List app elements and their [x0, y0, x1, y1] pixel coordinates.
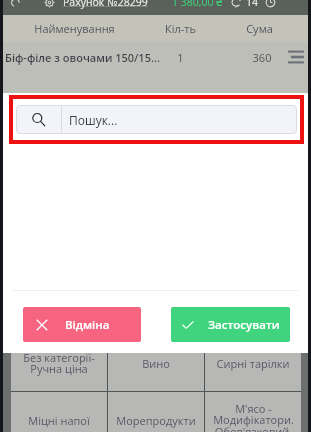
button[interactable]: Сирні тарілки — [205, 353, 301, 391]
staticText: Кіл-ть — [149, 21, 212, 36]
staticText: Відміна — [65, 317, 110, 333]
button[interactable]: Вино — [108, 353, 204, 391]
staticText: Біф-філе з овочами 150/15... — [5, 50, 162, 65]
staticText: Без категорії- Ручна ціна — [23, 353, 95, 376]
button[interactable]: М'ясо - Модифікатори. Обов'язковий. — [205, 392, 301, 432]
button[interactable]: Comments — [230, 0, 243, 9]
button[interactable]: Back — [9, 0, 22, 9]
button[interactable]: Time — [264, 0, 277, 9]
staticText: Міцні напої — [28, 413, 90, 428]
staticText: Найменування — [0, 21, 149, 36]
button[interactable]: Пошук... — [16, 105, 297, 134]
button[interactable]: Item menu — [287, 48, 305, 66]
staticText: Рахунок №28299 — [63, 0, 148, 9]
button[interactable]: Морепродукти — [108, 392, 204, 432]
staticText: 1 380,00 ₴ — [172, 0, 223, 9]
staticText: Сума — [212, 21, 307, 36]
button[interactable]: Відміна — [23, 307, 141, 342]
button[interactable]: Settings — [43, 0, 56, 9]
staticText: Вино — [142, 356, 170, 371]
staticText: Сирні тарілки — [216, 356, 290, 371]
staticText: Пошук... — [69, 112, 118, 128]
button[interactable]: Міцні напої — [11, 392, 107, 432]
staticText: 360 — [206, 50, 311, 65]
staticText: Морепродукти — [116, 413, 196, 428]
staticText: М'ясо - Модифікатори. Обов'язковий. — [213, 401, 294, 432]
button[interactable]: Без категорії- Ручна ціна — [11, 353, 107, 391]
staticText: Застосувати — [208, 317, 280, 333]
button[interactable]: Застосувати — [171, 307, 290, 342]
button[interactable]: Рахунок №28299 — [63, 0, 148, 9]
staticText: 14 — [246, 0, 259, 9]
staticText: 1 — [162, 50, 199, 65]
